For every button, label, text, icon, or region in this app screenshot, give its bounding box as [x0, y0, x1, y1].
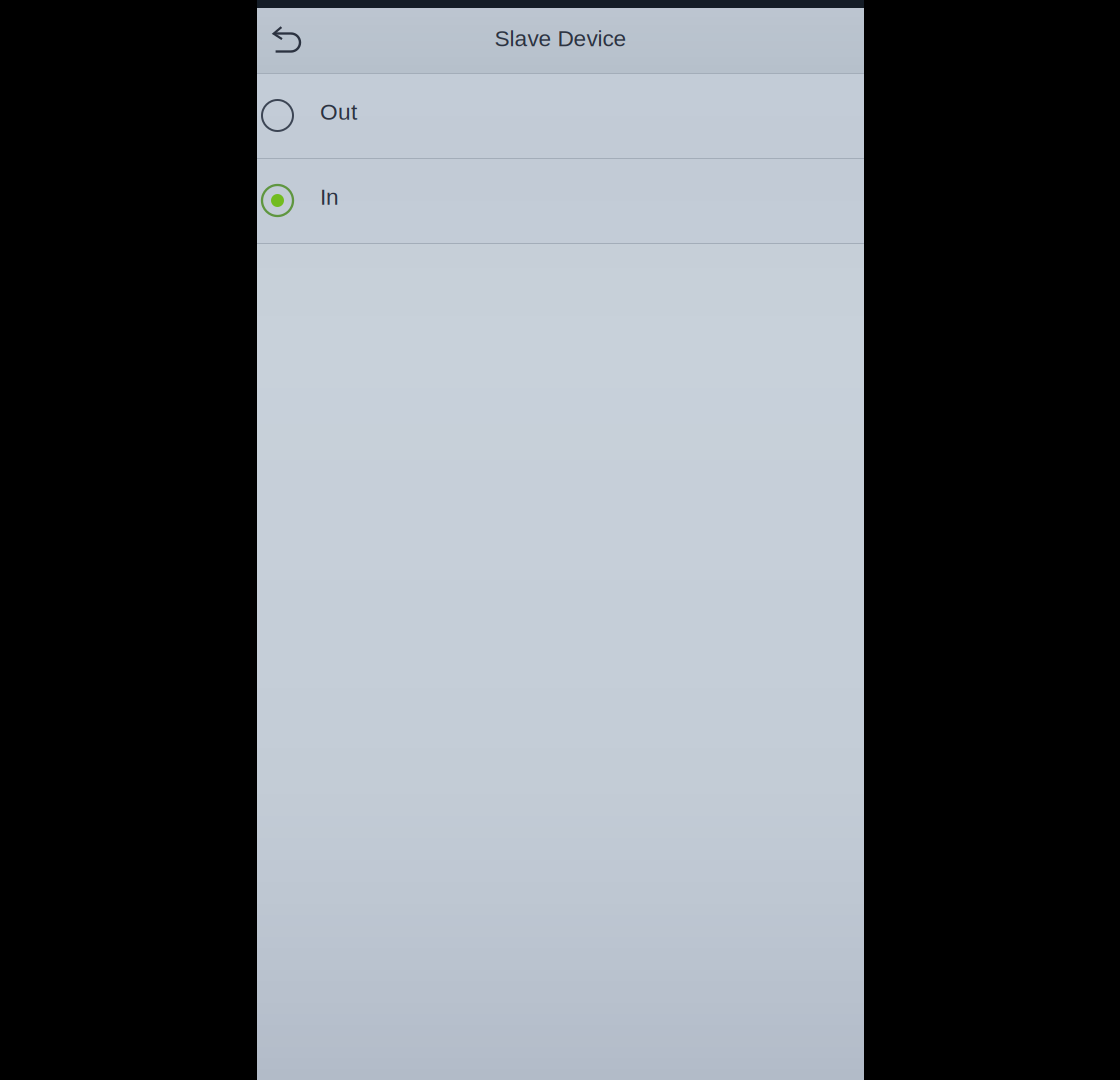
staticText: Slave Device [494, 26, 626, 51]
button[interactable]: Out [257, 74, 864, 158]
button[interactable]: Back [257, 8, 319, 73]
button[interactable]: In [257, 159, 864, 243]
staticText: In [320, 184, 339, 210]
staticText: Out [320, 99, 357, 125]
